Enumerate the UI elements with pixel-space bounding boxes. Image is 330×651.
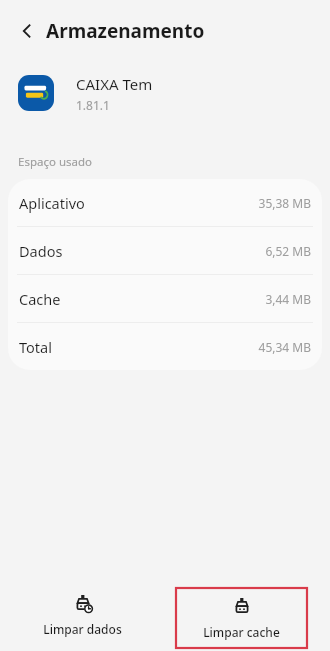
staticText: 3,44 MB xyxy=(265,291,311,307)
staticText: Limpar dados xyxy=(43,621,122,637)
staticText: Aplicativo xyxy=(19,193,85,213)
staticText: 6,52 MB xyxy=(265,243,311,259)
staticText: Total xyxy=(19,337,52,357)
button[interactable]: Aplicativo xyxy=(8,179,322,226)
staticText: Dados xyxy=(19,241,63,261)
staticText: CAIXA Tem xyxy=(76,74,153,94)
staticText: Cache xyxy=(19,289,61,309)
staticText: 1.81.1 xyxy=(76,97,110,113)
staticText: 45,34 MB xyxy=(258,339,311,355)
staticText: Armazenamento xyxy=(46,18,205,44)
staticText: 35,38 MB xyxy=(258,195,311,211)
button[interactable]: Limpar dados xyxy=(0,580,165,651)
staticText: Espaço usado xyxy=(18,154,92,170)
button[interactable]: Total xyxy=(8,323,322,370)
button[interactable]: Limpar cache xyxy=(176,588,307,648)
staticText: Limpar cache xyxy=(203,624,280,640)
button[interactable]: Cache xyxy=(8,275,322,322)
button[interactable]: Back xyxy=(10,14,44,48)
button[interactable]: Dados xyxy=(8,227,322,274)
